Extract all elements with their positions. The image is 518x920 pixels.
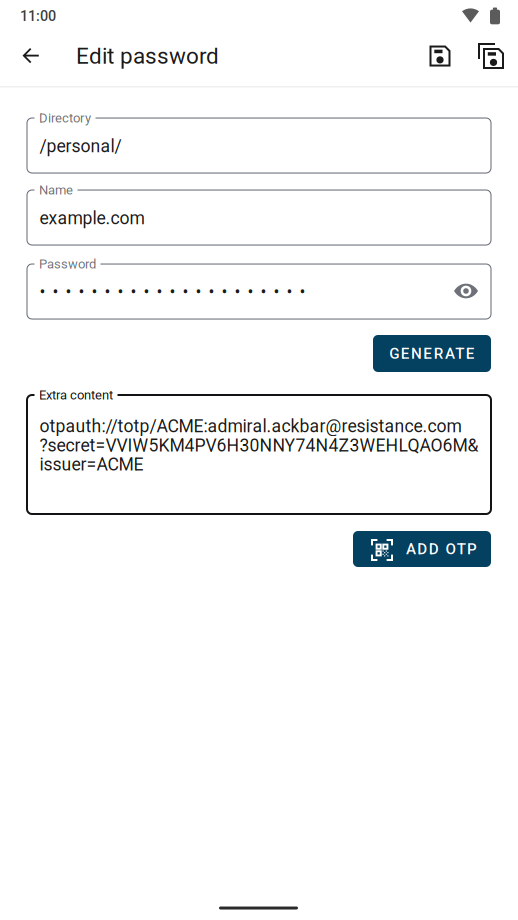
staticText: otpauth://totp/ACME:admiral.ackbar@resis… xyxy=(39,416,461,437)
staticText: ?secret=VVIW5KM4PV6H30NNY74N4Z3WEHLQAO6M… xyxy=(39,435,478,456)
staticText: /personal/ xyxy=(39,136,121,157)
button[interactable]: GENERATE xyxy=(373,335,491,372)
button[interactable]: Show password xyxy=(443,268,489,314)
button[interactable]: ADD OTP xyxy=(353,531,491,567)
button[interactable]: Save xyxy=(416,32,464,80)
staticText: issuer=ACME xyxy=(39,454,143,475)
staticText: ADD OTP xyxy=(406,540,477,558)
staticText: Password xyxy=(39,256,96,272)
button[interactable]: Save as copy xyxy=(467,32,515,80)
staticText: Directory xyxy=(39,110,91,126)
button[interactable]: Back xyxy=(7,32,55,80)
staticText: ••••••••••••••••••••• xyxy=(39,282,305,303)
staticText: 11:00 xyxy=(20,8,56,24)
staticText: example.com xyxy=(39,208,144,229)
staticText: GENERATE xyxy=(389,345,475,362)
staticText: Name xyxy=(39,182,73,198)
staticText: Extra content xyxy=(39,387,113,403)
staticText: Edit password xyxy=(76,43,219,69)
